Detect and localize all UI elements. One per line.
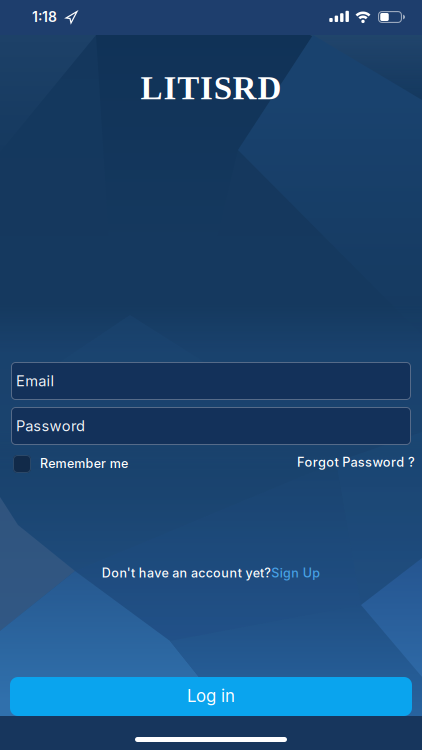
staticText: Sign Up [271, 565, 320, 581]
staticText: Don't have an account yet? [102, 565, 271, 581]
staticText: LITISRD [141, 70, 281, 106]
staticText: 1:18 [32, 8, 57, 25]
staticText: Password [16, 417, 85, 435]
staticText: Email [16, 372, 55, 390]
staticText: Remember me [40, 456, 128, 471]
staticText: Log in [187, 686, 235, 706]
staticText: Forgot Password ? [297, 454, 415, 470]
